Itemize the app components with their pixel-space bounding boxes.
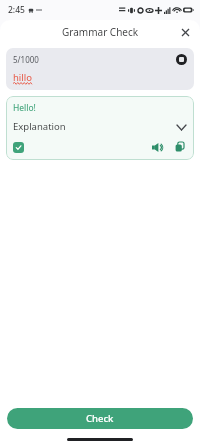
button[interactable]: Check (7, 408, 193, 429)
button[interactable]: Explanation (13, 120, 187, 133)
staticText: Grammar Check (62, 25, 139, 39)
staticText: 2:45 (8, 4, 25, 16)
button[interactable]: Listen (150, 140, 164, 154)
staticText: 5/1000 (13, 54, 39, 65)
button[interactable]: Accept correction (13, 142, 24, 153)
staticText: hillo (13, 71, 32, 84)
button[interactable]: 5/1000 (6, 48, 194, 90)
button[interactable]: Copy (173, 140, 187, 154)
staticText: Hello! (13, 102, 36, 114)
staticText: Check (86, 412, 114, 425)
button[interactable]: Clear text (176, 54, 187, 65)
button[interactable]: Close (176, 23, 194, 41)
staticText: Explanation (13, 120, 66, 133)
other: Expand explanation (175, 121, 187, 133)
